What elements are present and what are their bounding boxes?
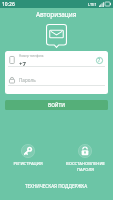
staticText: ТЕХНИЧЕСКАЯ ПОДДЕРЖКА <box>25 183 88 189</box>
staticText: +7 <box>19 60 26 66</box>
staticText: РЕГИСТРАЦИЯ <box>13 161 43 167</box>
button[interactable]: ТЕХНИЧЕСКАЯ ПОДДЕРЖКА <box>0 180 113 192</box>
staticText: LTE1 <box>88 2 99 7</box>
staticText: ВОЙТИ <box>48 102 65 109</box>
button[interactable]: Help <box>95 56 104 65</box>
staticText: Номер телефона <box>19 54 44 58</box>
staticText: ? <box>98 57 101 64</box>
button[interactable]: РЕГИСТРАЦИЯ <box>2 144 54 167</box>
button[interactable]: Номер телефона <box>5 51 108 66</box>
staticText: 10:26 <box>2 1 15 8</box>
button[interactable]: ВОССТАНОВЛЕНИЕ ПАРОЛЯ <box>59 144 111 173</box>
staticText: Пароль <box>19 77 36 83</box>
button[interactable]: Пароль <box>5 67 108 85</box>
staticText: Авторизация <box>36 10 77 19</box>
staticText: ВОССТАНОВЛЕНИЕ ПАРОЛЯ <box>66 161 105 173</box>
button[interactable]: ВОЙТИ <box>5 100 108 110</box>
